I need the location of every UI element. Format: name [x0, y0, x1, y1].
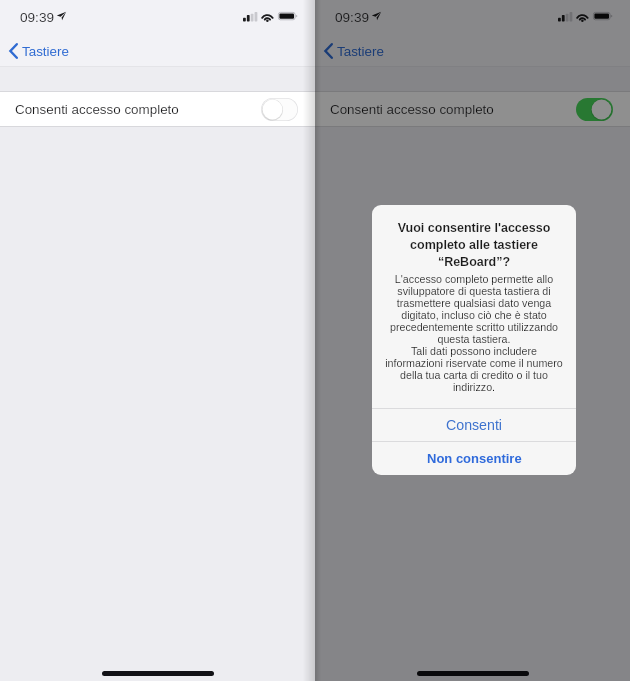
staticText: L'accesso completo permette allo svilupp…	[372, 273, 576, 393]
staticText: Tastiere	[22, 44, 69, 59]
staticText: 09:39	[335, 10, 370, 25]
button[interactable]: Consenti	[372, 409, 576, 441]
staticText: Consenti	[446, 417, 502, 433]
staticText: Non consentire	[427, 451, 522, 466]
staticText: Tastiere	[337, 44, 384, 59]
staticText: 09:39	[20, 10, 55, 25]
staticText: Consenti accesso completo	[15, 102, 179, 117]
button[interactable]: Consenti accesso completo	[576, 98, 613, 121]
button[interactable]: Consenti accesso completo	[0, 92, 315, 126]
button[interactable]: Non consentire	[372, 442, 576, 475]
button[interactable]: Consenti accesso completo	[315, 92, 630, 126]
staticText: Vuoi consentire l'accesso completo alle …	[372, 221, 576, 269]
button[interactable]: Consenti accesso completo	[261, 98, 298, 121]
staticText: Consenti accesso completo	[330, 102, 494, 117]
button[interactable]: Back to Tastiere	[320, 38, 388, 64]
button[interactable]: Back to Tastiere	[5, 38, 73, 64]
